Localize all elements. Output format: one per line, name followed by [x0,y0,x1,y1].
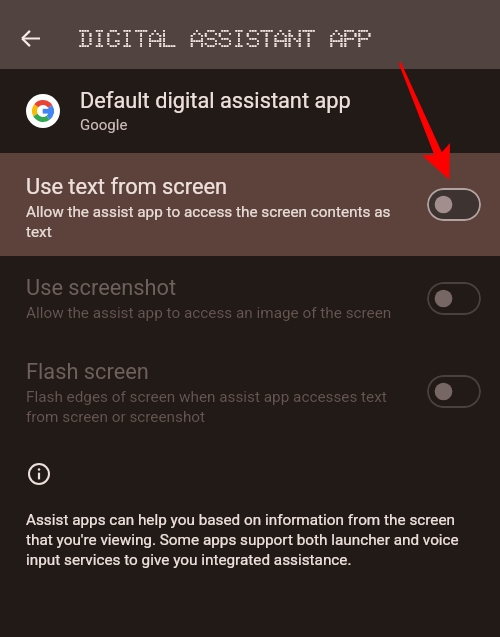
staticText: Allow the assist app to access the scree… [26,203,394,241]
button[interactable]: Use screenshot [427,282,481,315]
button[interactable]: Use text from screen [0,153,500,256]
staticText: DIGITAL ASSISTANT APP [79,23,372,54]
button[interactable]: Use text from screen [427,188,481,221]
staticText: Google [80,116,128,134]
button[interactable]: Flash screen [0,341,500,442]
button[interactable]: Back [10,18,51,59]
staticText: Default digital assistant app [80,88,351,114]
staticText: Use text from screen [26,174,228,200]
staticText: Flash edges of screen when assist app ac… [26,388,398,426]
staticText: Flash screen [26,359,149,385]
button[interactable]: Flash screen [427,375,481,408]
button[interactable]: Default digital assistant app [0,69,500,153]
staticText: Assist apps can help you based on inform… [26,511,474,569]
staticText: Allow the assist app to access an image … [26,304,392,322]
button[interactable]: Use screenshot [0,256,500,341]
staticText: Use screenshot [26,275,177,301]
